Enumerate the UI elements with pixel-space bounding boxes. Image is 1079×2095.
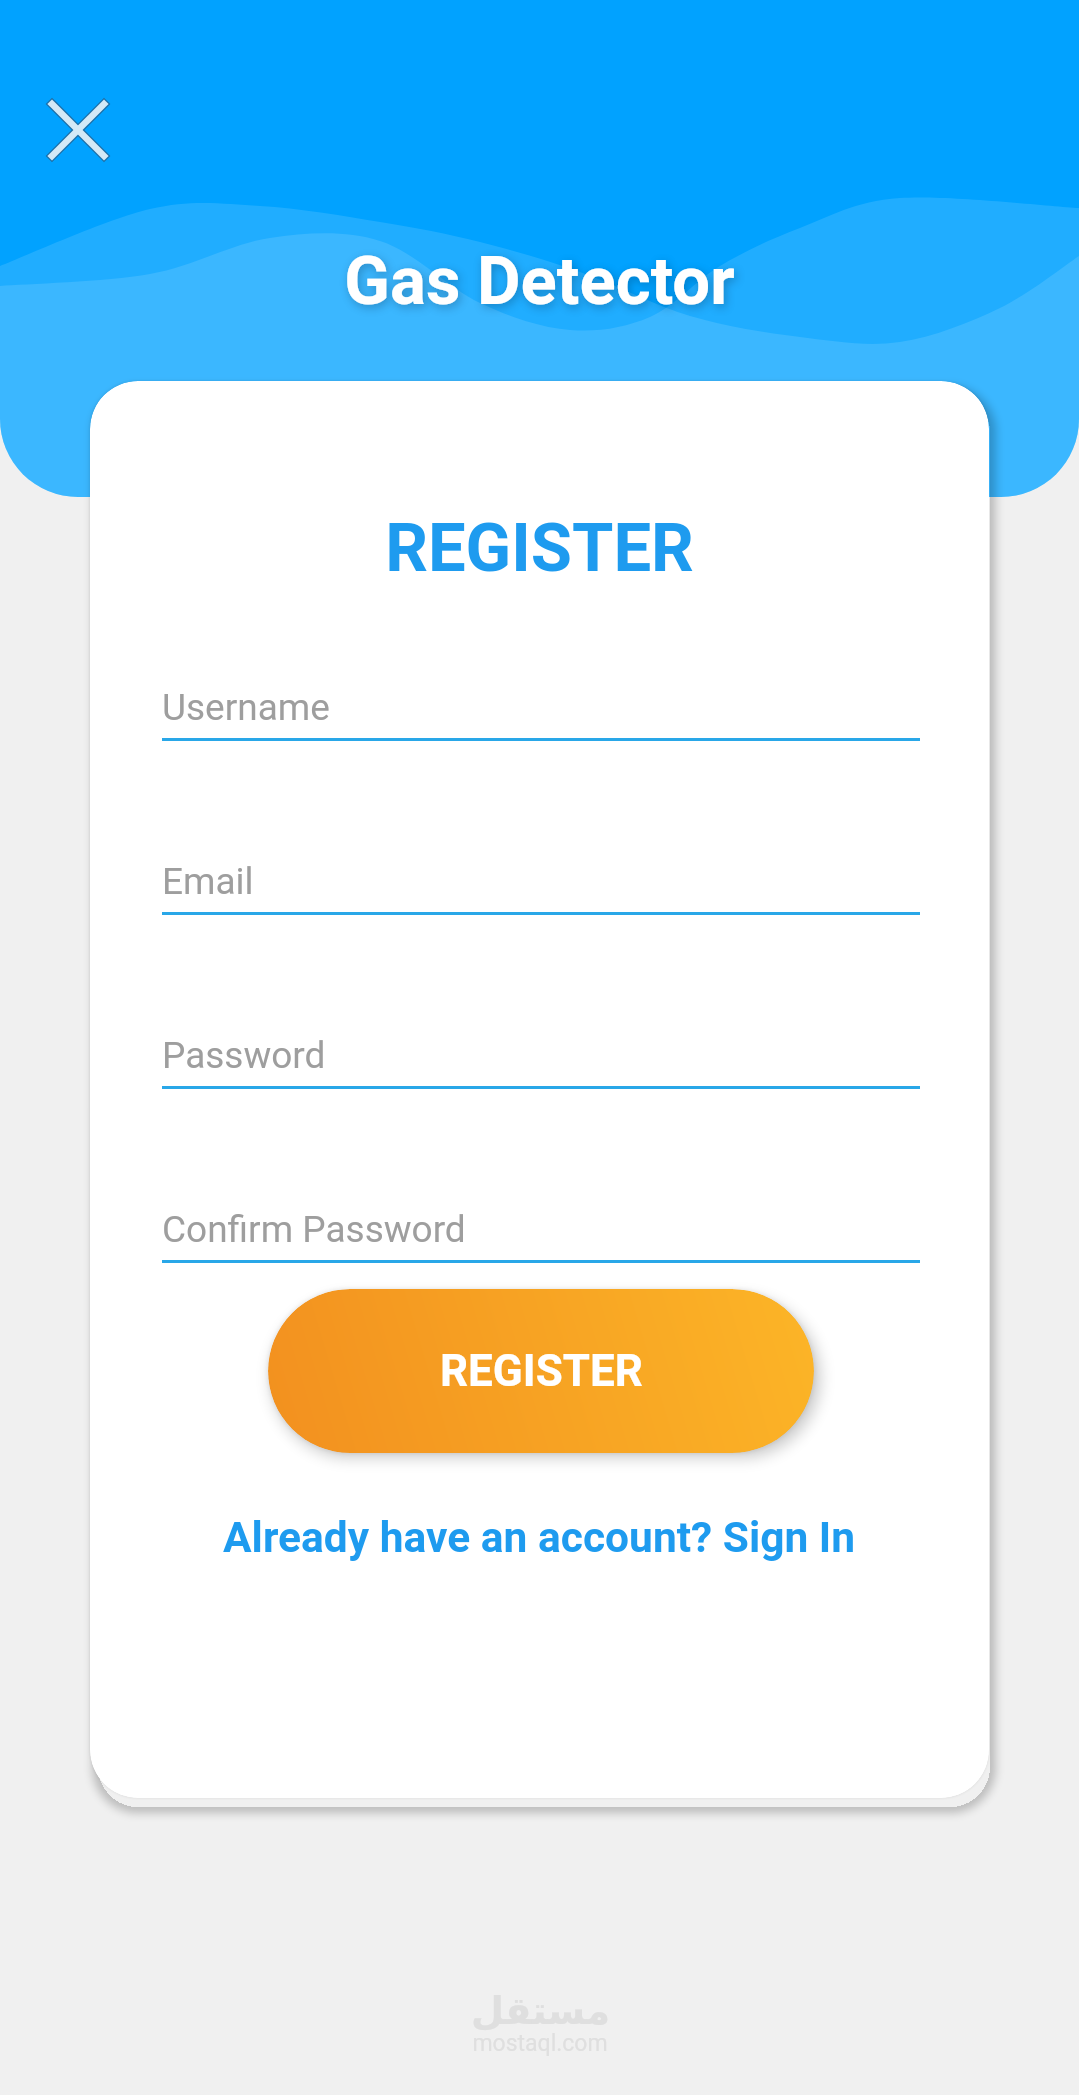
button[interactable]: Password xyxy=(162,1011,920,1089)
staticText: Already have an account? Sign In xyxy=(223,1513,856,1563)
staticText: Password xyxy=(162,1034,326,1077)
staticText: mostaql.com xyxy=(472,2030,608,2057)
button[interactable]: Close xyxy=(30,82,126,178)
staticText: Username xyxy=(162,686,330,729)
button[interactable]: REGISTER xyxy=(268,1289,814,1453)
staticText: Email xyxy=(162,860,254,903)
staticText: REGISTER xyxy=(90,509,989,588)
button[interactable]: Already have an account? Sign In xyxy=(90,1496,989,1580)
button[interactable]: Email xyxy=(162,837,920,915)
staticText: Confirm Password xyxy=(162,1208,466,1251)
staticText: مستقل xyxy=(471,1989,610,2033)
button[interactable]: Username xyxy=(162,663,920,741)
staticText: Gas Detector xyxy=(0,242,1079,321)
button[interactable]: Confirm Password xyxy=(162,1185,920,1263)
staticText: REGISTER xyxy=(440,1345,643,1397)
